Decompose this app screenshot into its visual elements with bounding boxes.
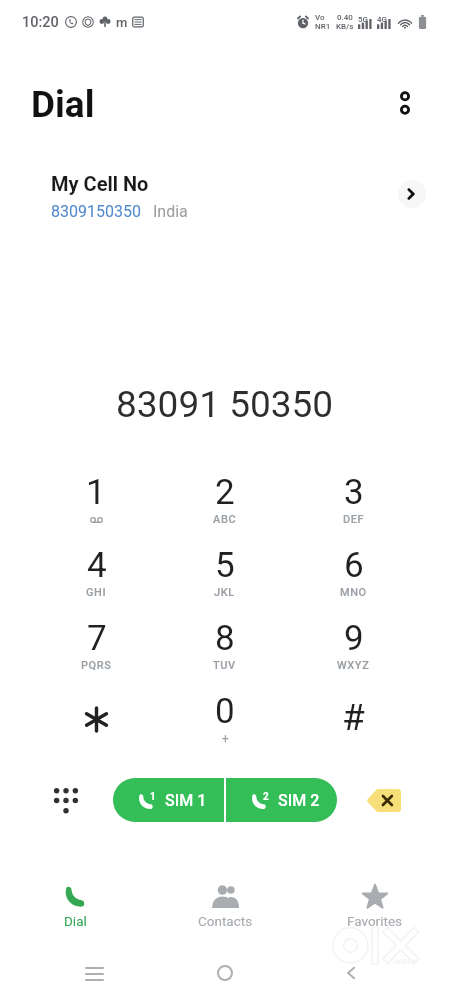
staticText: KB/s bbox=[336, 22, 354, 31]
button[interactable]: 4 bbox=[32, 545, 160, 618]
staticText: GHI bbox=[86, 586, 107, 599]
staticText: WXYZ bbox=[337, 659, 370, 672]
staticText: 0.40 bbox=[337, 13, 353, 22]
button[interactable]: Open my number bbox=[398, 180, 426, 208]
staticText: 3 bbox=[344, 472, 364, 513]
button[interactable]: My Cell No bbox=[0, 172, 450, 234]
staticText: MNO bbox=[340, 586, 367, 599]
button[interactable]: 2 bbox=[226, 778, 337, 822]
staticText: Dial bbox=[64, 913, 87, 929]
staticText: 83091 50350 bbox=[116, 383, 334, 426]
staticText: # bbox=[342, 696, 365, 739]
staticText: NR1 bbox=[315, 22, 331, 31]
staticText: 5 bbox=[215, 545, 235, 586]
button[interactable]: 9 bbox=[289, 618, 418, 691]
button[interactable]: Dial bbox=[0, 878, 150, 934]
button[interactable]: 7 bbox=[32, 618, 160, 691]
staticText: INDIA bbox=[393, 958, 417, 966]
button[interactable]: Recent apps bbox=[72, 951, 116, 995]
button[interactable]: Contacts bbox=[150, 878, 300, 934]
staticText: 6 bbox=[344, 545, 364, 586]
staticText: Dial bbox=[31, 83, 95, 126]
staticText: m bbox=[116, 15, 128, 30]
staticText: Vo bbox=[315, 13, 325, 22]
button[interactable]: 1 bbox=[32, 472, 160, 545]
button[interactable]: Keypad bbox=[44, 778, 88, 822]
staticText: DEF bbox=[343, 513, 365, 526]
staticText: 1 bbox=[86, 472, 106, 513]
button[interactable]: Home bbox=[203, 951, 247, 995]
staticText: 4 bbox=[87, 545, 107, 586]
button[interactable]: 5 bbox=[160, 545, 289, 618]
staticText: 8309150350 bbox=[51, 202, 141, 221]
staticText: 2 bbox=[215, 472, 235, 513]
staticText: 0 bbox=[215, 691, 235, 732]
staticText: ABC bbox=[213, 513, 237, 526]
staticText: My Cell No bbox=[51, 172, 149, 195]
button[interactable]: 1 bbox=[113, 778, 224, 822]
button[interactable]: # bbox=[289, 691, 418, 764]
staticText: 10:20 bbox=[22, 14, 59, 31]
button[interactable]: 2 bbox=[160, 472, 289, 545]
button[interactable]: 3 bbox=[289, 472, 418, 545]
button[interactable]: Back bbox=[329, 951, 373, 995]
button[interactable]: Backspace bbox=[362, 778, 406, 822]
button[interactable]: 0 bbox=[160, 691, 289, 764]
staticText: 1 bbox=[150, 791, 156, 803]
staticText: Contacts bbox=[198, 913, 253, 929]
button[interactable]: More options bbox=[388, 86, 422, 120]
button[interactable]: 8 bbox=[160, 618, 289, 691]
button[interactable]: Favorites bbox=[300, 878, 450, 934]
staticText: 2 bbox=[263, 791, 269, 803]
staticText: PQRS bbox=[81, 659, 112, 672]
staticText: SIM 2 bbox=[278, 791, 320, 810]
staticText: 9 bbox=[344, 618, 364, 659]
staticText: 4G bbox=[377, 15, 387, 24]
button[interactable]: 6 bbox=[289, 545, 418, 618]
staticText: + bbox=[222, 732, 229, 746]
button[interactable] bbox=[32, 691, 160, 764]
staticText: 5G bbox=[358, 15, 368, 24]
staticText: TUV bbox=[213, 659, 236, 672]
staticText: India bbox=[153, 202, 188, 221]
staticText: 7 bbox=[87, 618, 107, 659]
staticText: SIM 1 bbox=[165, 791, 207, 810]
staticText: Favorites bbox=[347, 913, 403, 929]
staticText: 8 bbox=[215, 618, 235, 659]
staticText: JKL bbox=[214, 586, 235, 599]
